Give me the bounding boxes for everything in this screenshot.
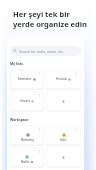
staticText: Reminders [18, 77, 32, 81]
staticText: Marketing [21, 138, 34, 142]
staticText: Sales [60, 138, 67, 142]
button[interactable]: Add list [46, 91, 81, 111]
staticText: Personal [56, 77, 67, 81]
button[interactable]: Personal [46, 69, 81, 89]
button[interactable]: Grocery [10, 91, 44, 111]
staticText: Mobile [21, 160, 30, 164]
staticText: Search for tasks, notes, etc. [19, 49, 64, 54]
button[interactable]: Sales [46, 125, 81, 145]
button[interactable]: Marketing [10, 125, 44, 145]
staticText: My lists [10, 61, 23, 66]
staticText: yerde organize edin [13, 19, 87, 29]
button[interactable]: Mobile [10, 147, 44, 167]
button[interactable]: Reminders [10, 69, 44, 89]
button[interactable]: Add workspace [46, 147, 81, 167]
button[interactable]: Search for tasks, notes, etc. [10, 46, 81, 56]
staticText: Her şeyi tek bir [13, 9, 70, 19]
staticText: Grocery [20, 99, 30, 103]
staticText: Workspace [10, 117, 29, 122]
